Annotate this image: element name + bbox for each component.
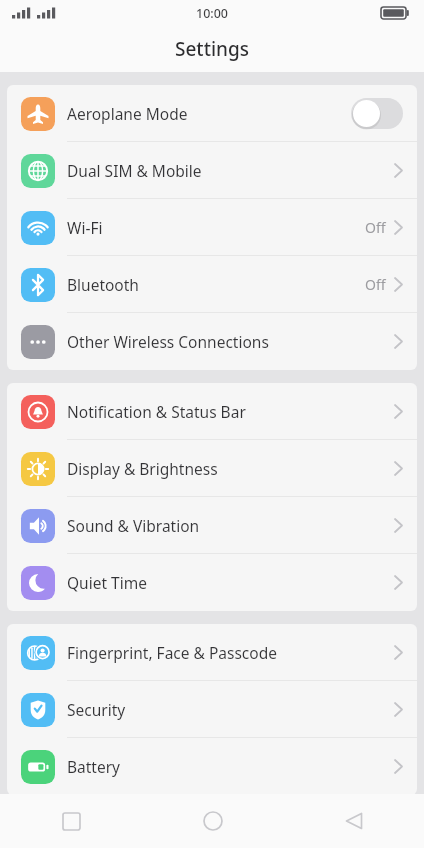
button[interactable]: Home xyxy=(142,794,283,848)
button[interactable]: Wi-Fi xyxy=(7,199,417,256)
button[interactable]: Aeroplane Mode xyxy=(7,85,417,142)
staticText: Fingerprint, Face & Passcode xyxy=(67,642,394,663)
button[interactable]: Security xyxy=(7,681,417,738)
staticText: Settings xyxy=(175,36,249,62)
staticText: Wi-Fi xyxy=(67,217,365,238)
button[interactable]: Sound & Vibration xyxy=(7,497,417,554)
staticText: 10:00 xyxy=(196,5,229,22)
button[interactable]: Battery xyxy=(7,738,417,795)
staticText: Off xyxy=(365,218,386,237)
staticText: Display & Brightness xyxy=(67,458,394,479)
staticText: Aeroplane Mode xyxy=(67,103,351,124)
button[interactable]: Bluetooth xyxy=(7,256,417,313)
staticText: Off xyxy=(365,275,386,294)
staticText: Dual SIM & Mobile xyxy=(67,160,394,181)
button[interactable]: Dual SIM & Mobile xyxy=(7,142,417,199)
button[interactable]: Recent apps xyxy=(0,794,142,848)
staticText: Sound & Vibration xyxy=(67,515,394,536)
staticText: Battery xyxy=(67,756,394,777)
staticText: Quiet Time xyxy=(67,572,394,593)
staticText: Notification & Status Bar xyxy=(67,401,394,422)
staticText: Other Wireless Connections xyxy=(67,331,394,352)
button[interactable]: Display & Brightness xyxy=(7,440,417,497)
staticText: Bluetooth xyxy=(67,274,365,295)
button[interactable]: Fingerprint, Face & Passcode xyxy=(7,624,417,681)
button[interactable]: Back xyxy=(283,794,424,848)
button[interactable]: Other Wireless Connections xyxy=(7,313,417,370)
button[interactable]: Notification & Status Bar xyxy=(7,383,417,440)
button[interactable]: Quiet Time xyxy=(7,554,417,611)
staticText: Security xyxy=(67,699,394,720)
